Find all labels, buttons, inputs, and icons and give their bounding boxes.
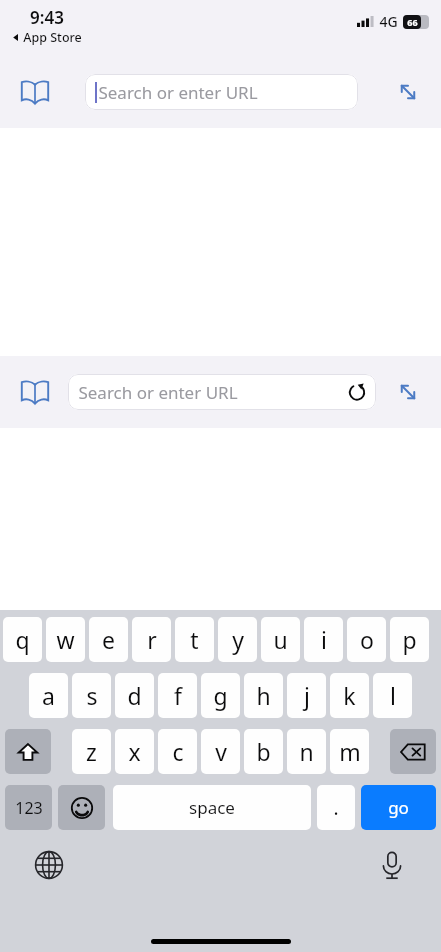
staticText: f <box>174 680 182 711</box>
button[interactable]: s <box>72 673 111 718</box>
button[interactable]: k <box>330 673 369 718</box>
staticText: Search or enter URL <box>78 381 238 404</box>
button[interactable]: r <box>132 617 171 662</box>
button[interactable]: v <box>201 729 240 774</box>
staticText: a <box>42 680 55 711</box>
button[interactable]: g <box>201 673 240 718</box>
staticText: u <box>273 624 288 655</box>
staticText: m <box>339 736 361 767</box>
staticText: z <box>86 736 97 767</box>
staticText: s <box>86 680 98 711</box>
staticText: c <box>172 736 184 767</box>
button[interactable]: Backspace <box>390 729 436 774</box>
staticText: 66 <box>407 16 418 28</box>
staticText: n <box>299 736 314 767</box>
staticText: p <box>402 624 417 655</box>
staticText: y <box>232 624 244 655</box>
button[interactable]: o <box>347 617 386 662</box>
button[interactable]: d <box>115 673 154 718</box>
button[interactable]: z <box>72 729 111 774</box>
staticText: q <box>15 624 30 655</box>
staticText: r <box>147 624 157 655</box>
button[interactable]: x <box>115 729 154 774</box>
button[interactable]: e <box>89 617 128 662</box>
staticText: g <box>213 680 228 711</box>
button[interactable]: f <box>158 673 197 718</box>
button[interactable]: m <box>330 729 369 774</box>
staticText: App Store <box>23 29 82 46</box>
button[interactable]: u <box>261 617 300 662</box>
button[interactable]: . <box>317 785 355 830</box>
staticText: d <box>127 680 142 711</box>
staticText: k <box>343 680 356 711</box>
staticText: j <box>304 680 310 711</box>
staticText: 123 <box>15 797 43 819</box>
staticText: b <box>256 736 271 767</box>
button[interactable]: Expand <box>393 77 423 107</box>
button[interactable]: b <box>244 729 283 774</box>
staticText: Search or enter URL <box>98 81 258 104</box>
staticText: i <box>321 624 327 655</box>
staticText: h <box>256 680 271 711</box>
staticText: t <box>190 624 199 655</box>
button[interactable]: 123 <box>5 785 52 830</box>
button[interactable]: Dictate <box>375 848 409 882</box>
staticText: go <box>388 796 409 819</box>
staticText: x <box>128 736 141 767</box>
staticText: v <box>215 736 227 767</box>
staticText: l <box>390 680 396 711</box>
button[interactable]: Bookmarks <box>18 377 52 407</box>
button[interactable]: c <box>158 729 197 774</box>
button[interactable]: Reload <box>346 381 368 403</box>
button[interactable]: Search or enter URL <box>85 74 358 110</box>
button[interactable]: Expand <box>393 377 423 407</box>
button[interactable]: h <box>244 673 283 718</box>
button[interactable]: q <box>3 617 42 662</box>
staticText: 9:43 <box>30 6 64 29</box>
staticText: o <box>360 624 374 655</box>
button[interactable]: a <box>29 673 68 718</box>
button[interactable]: n <box>287 729 326 774</box>
staticText: e <box>102 624 115 655</box>
button[interactable]: y <box>218 617 257 662</box>
button[interactable]: j <box>287 673 326 718</box>
button[interactable]: Emoji <box>58 785 105 830</box>
staticText: . <box>333 795 339 821</box>
button[interactable]: p <box>390 617 429 662</box>
button[interactable]: space <box>113 785 311 830</box>
staticText: 4G <box>379 12 398 31</box>
button[interactable]: Search or enter URL <box>68 374 376 410</box>
button[interactable]: i <box>304 617 343 662</box>
button[interactable]: Bookmarks <box>18 77 52 107</box>
button[interactable]: go <box>361 785 436 830</box>
button[interactable]: l <box>373 673 412 718</box>
staticText: space <box>189 796 235 819</box>
staticText: w <box>56 624 75 655</box>
button[interactable]: Shift <box>5 729 51 774</box>
button[interactable]: w <box>46 617 85 662</box>
button[interactable]: t <box>175 617 214 662</box>
button[interactable]: Change keyboard <box>32 848 66 882</box>
